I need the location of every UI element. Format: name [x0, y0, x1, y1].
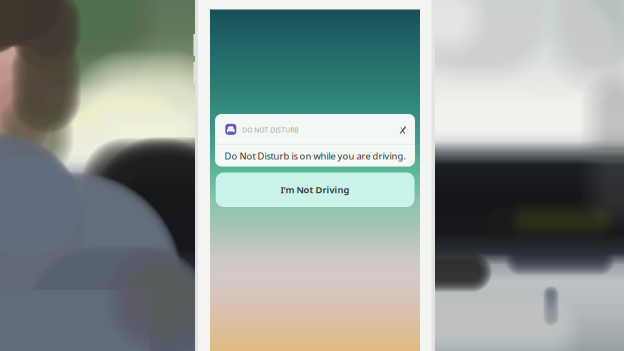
staticText: DO NOT DISTURB: [242, 125, 298, 134]
button[interactable]: I'm Not Driving: [216, 172, 414, 207]
staticText: I'm Not Driving: [281, 184, 350, 196]
button[interactable]: Close notification: [399, 126, 407, 134]
button[interactable]: Do Not Disturb While Driving: [225, 124, 236, 135]
staticText: Do Not Disturb is on while you are drivi…: [224, 150, 406, 162]
